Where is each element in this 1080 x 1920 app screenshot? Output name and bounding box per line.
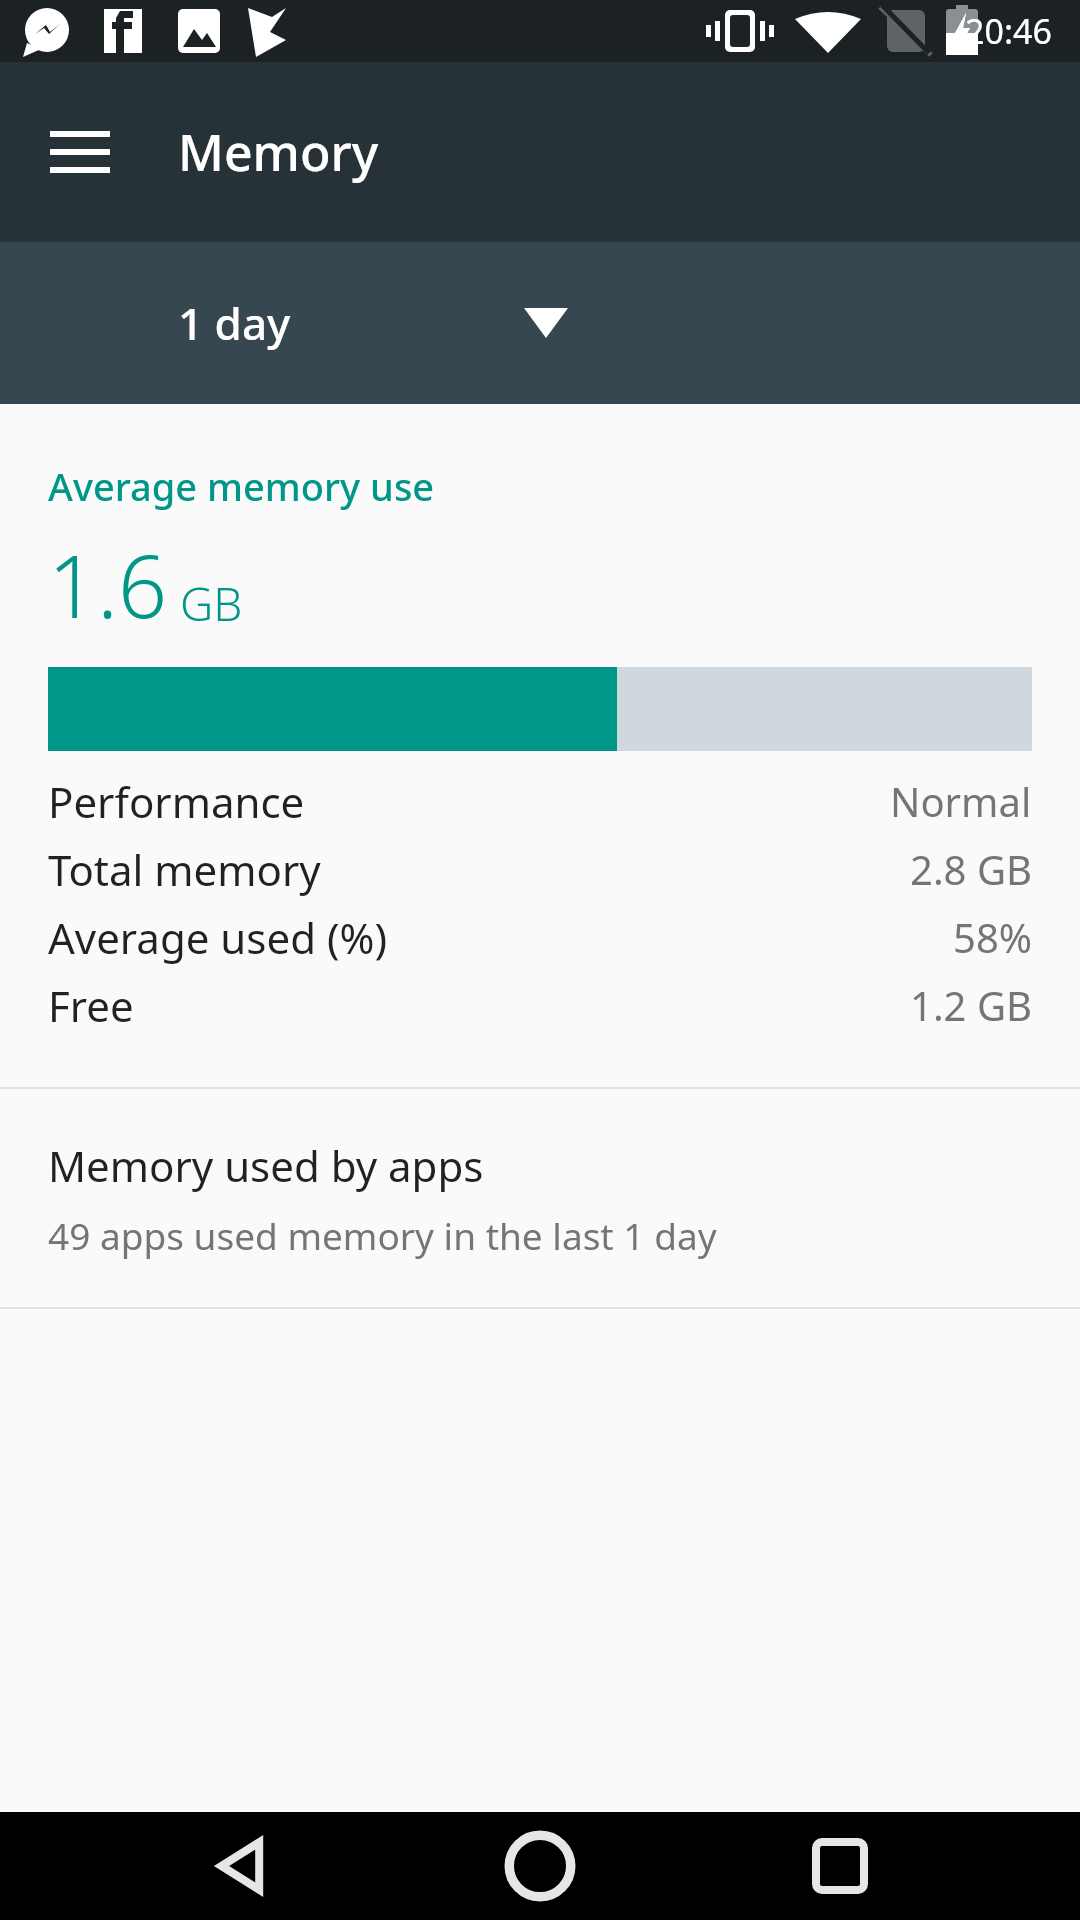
button[interactable]: 1 day (0, 242, 1080, 404)
staticText: Average memory use (48, 460, 435, 512)
button[interactable]: Open navigation menu (30, 102, 130, 202)
button[interactable]: Back (183, 1812, 303, 1920)
button[interactable]: Home (480, 1812, 600, 1920)
staticText: GB (180, 572, 243, 635)
staticText: Performance (48, 773, 305, 830)
button[interactable]: Recent apps (780, 1812, 900, 1920)
button[interactable]: Memory used by apps (0, 1089, 1080, 1307)
staticText: 1.2 GB (910, 978, 1032, 1032)
staticText: 20:46 (965, 8, 1052, 54)
staticText: 2.8 GB (910, 842, 1032, 896)
staticText: Normal (890, 774, 1032, 828)
staticText: 58% (953, 910, 1032, 964)
staticText: 1 day (178, 293, 291, 353)
staticText: 1.6 (48, 526, 168, 643)
staticText: Total memory (48, 841, 321, 898)
staticText: 49 apps used memory in the last 1 day (48, 1210, 717, 1260)
staticText: Memory (178, 118, 379, 186)
staticText: Average used (%) (48, 909, 387, 966)
staticText: Free (48, 977, 134, 1034)
staticText: Memory used by apps (48, 1137, 484, 1194)
